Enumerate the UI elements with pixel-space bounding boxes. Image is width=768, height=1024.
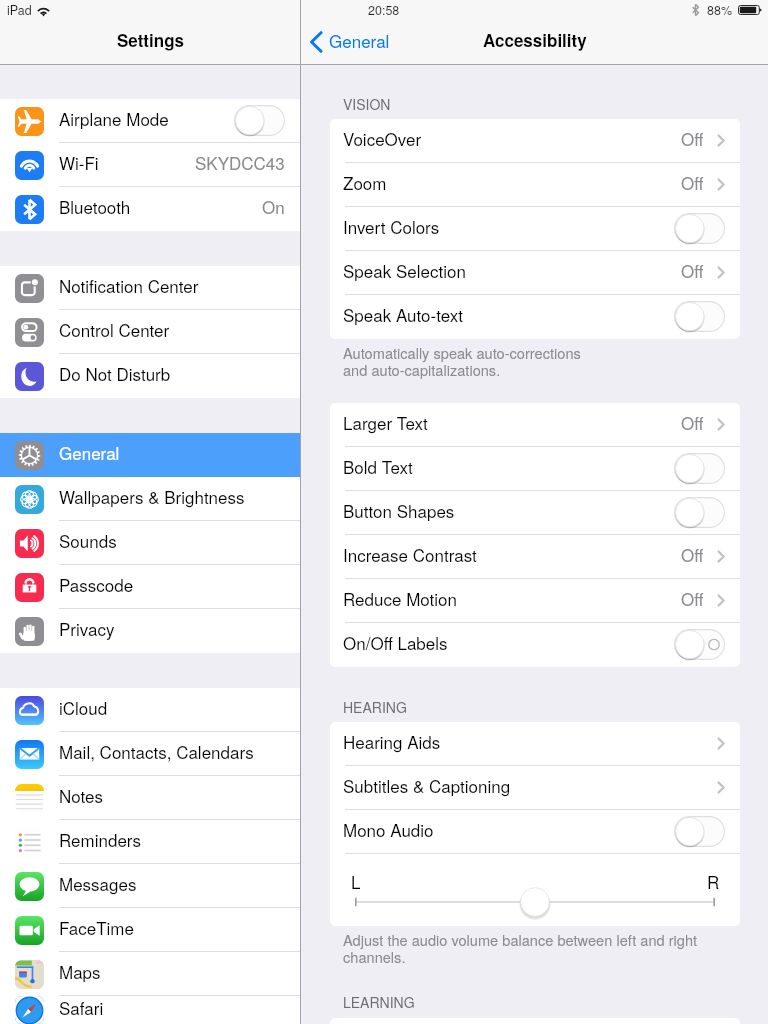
staticText: Subtitles & Captioning <box>343 773 511 797</box>
button[interactable]: Subtitles & Captioning <box>330 766 740 810</box>
button[interactable]: Safari <box>0 996 300 1024</box>
button[interactable]: Passcode <box>0 565 300 609</box>
staticText: Larger Text <box>343 410 428 434</box>
button[interactable]: Back to General <box>309 20 390 64</box>
staticText: Off <box>681 258 704 282</box>
button[interactable]: Toggle Airplane Mode, off <box>234 105 285 136</box>
staticText: On <box>262 194 285 218</box>
staticText: Hearing Aids <box>343 729 441 753</box>
staticText: Speak Auto-text <box>343 302 463 326</box>
button[interactable]: VoiceOver <box>330 119 740 163</box>
button[interactable]: FaceTime <box>0 908 300 952</box>
button[interactable]: iCloud <box>0 688 300 732</box>
button[interactable]: Messages <box>0 864 300 908</box>
button[interactable]: On/Off Labels <box>330 623 740 667</box>
button[interactable]: Bluetooth <box>0 187 300 231</box>
button[interactable]: Larger Text <box>330 403 740 447</box>
staticText: Bluetooth <box>59 194 131 218</box>
button[interactable]: Privacy <box>0 609 300 653</box>
button[interactable]: Maps <box>0 952 300 996</box>
staticText: On/Off Labels <box>343 630 448 654</box>
button[interactable]: Toggle Button Shapes, off <box>674 497 725 528</box>
staticText: VoiceOver <box>343 126 422 150</box>
staticText: Wallpapers & Brightness <box>59 484 245 508</box>
button[interactable]: Wi-Fi <box>0 143 300 187</box>
staticText: Mono Audio <box>343 817 434 841</box>
button[interactable]: Notification Center <box>0 266 300 310</box>
button[interactable]: Toggle Speak Auto-text, off <box>674 301 725 332</box>
staticText: 20:58 <box>368 1 400 19</box>
staticText: General <box>329 28 390 52</box>
staticText: VISION <box>343 94 391 114</box>
staticText: Reminders <box>59 827 142 851</box>
staticText: Bold Text <box>343 454 413 478</box>
button[interactable]: Zoom <box>330 163 740 207</box>
staticText: Control Center <box>59 317 170 341</box>
staticText: L <box>351 869 361 893</box>
button[interactable]: Invert Colors <box>330 207 740 251</box>
staticText: Messages <box>59 871 137 895</box>
staticText: Wi-Fi <box>59 150 99 174</box>
staticText: LEARNING <box>343 992 415 1012</box>
staticText: Do Not Disturb <box>59 361 171 385</box>
staticText: Automatically speak auto-corrections and… <box>343 342 581 380</box>
staticText: iPad <box>7 1 32 19</box>
staticText: Reduce Motion <box>343 586 457 610</box>
button[interactable]: Do Not Disturb <box>0 354 300 398</box>
button[interactable]: Hearing Aids <box>330 722 740 766</box>
button[interactable]: Sounds <box>0 521 300 565</box>
staticText: FaceTime <box>59 915 134 939</box>
button[interactable]: Airplane Mode <box>0 99 300 143</box>
staticText: Off <box>681 542 704 566</box>
button[interactable]: Toggle Invert Colors, off <box>674 213 725 244</box>
staticText: Off <box>681 586 704 610</box>
staticText: Airplane Mode <box>59 106 169 130</box>
staticText: Mail, Contacts, Calendars <box>59 739 254 763</box>
staticText: Zoom <box>343 170 387 194</box>
button[interactable]: Toggle On/Off Labels, off <box>674 629 725 660</box>
button[interactable]: Reminders <box>0 820 300 864</box>
staticText: Off <box>681 170 704 194</box>
staticText: Off <box>681 410 704 434</box>
staticText: Accessibility <box>483 28 587 52</box>
staticText: Sounds <box>59 528 117 552</box>
staticText: Notification Center <box>59 273 199 297</box>
button[interactable]: Reduce Motion <box>330 579 740 623</box>
staticText: Off <box>681 126 704 150</box>
button[interactable]: Wallpapers & Brightness <box>0 477 300 521</box>
button[interactable]: Speak Auto-text <box>330 295 740 339</box>
button[interactable]: General <box>0 433 300 477</box>
staticText: 88% <box>707 1 733 19</box>
button[interactable]: Mono Audio <box>330 810 740 854</box>
staticText: Increase Contrast <box>343 542 477 566</box>
staticText: Button Shapes <box>343 498 455 522</box>
button[interactable]: Control Center <box>0 310 300 354</box>
staticText: R <box>707 869 720 893</box>
staticText: HEARING <box>343 697 407 717</box>
button[interactable]: Balance slider <box>519 886 551 918</box>
button[interactable]: Speak Selection <box>330 251 740 295</box>
button[interactable]: Toggle Mono Audio, off <box>674 816 725 847</box>
staticText: Privacy <box>59 616 115 640</box>
staticText: iCloud <box>59 695 108 719</box>
staticText: Notes <box>59 783 103 807</box>
staticText: Safari <box>59 995 104 1019</box>
staticText: Settings <box>117 28 184 52</box>
button[interactable]: Toggle Bold Text, off <box>674 453 725 484</box>
staticText: Speak Selection <box>343 258 466 282</box>
button[interactable]: Mail, Contacts, Calendars <box>0 732 300 776</box>
staticText: Invert Colors <box>343 214 440 238</box>
button[interactable]: Notes <box>0 776 300 820</box>
staticText: Passcode <box>59 572 134 596</box>
staticText: Maps <box>59 959 101 983</box>
staticText: SKYDCC43 <box>195 150 285 174</box>
button[interactable]: Increase Contrast <box>330 535 740 579</box>
button[interactable]: Bold Text <box>330 447 740 491</box>
staticText: Adjust the audio volume balance between … <box>343 929 698 967</box>
button[interactable]: Button Shapes <box>330 491 740 535</box>
staticText: General <box>59 440 120 464</box>
